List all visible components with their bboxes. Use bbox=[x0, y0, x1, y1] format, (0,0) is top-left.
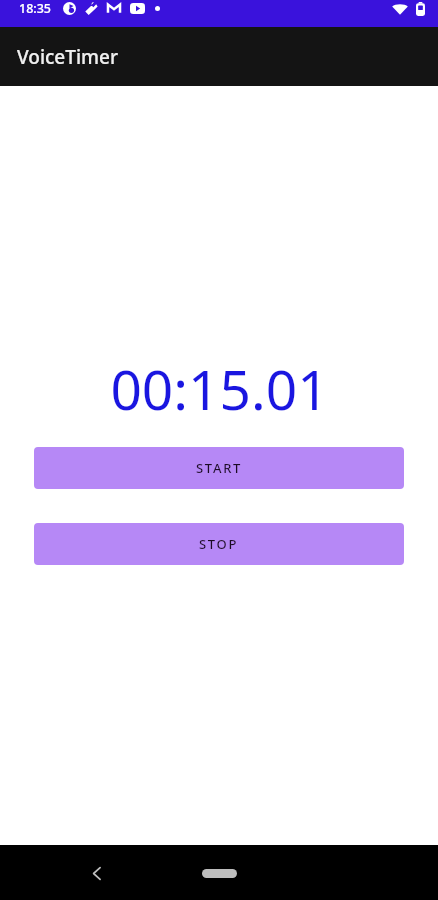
staticText: 18:35 bbox=[19, 0, 52, 17]
button[interactable]: START bbox=[34, 447, 404, 489]
button[interactable]: Back bbox=[80, 856, 114, 890]
button[interactable]: Home bbox=[183, 858, 255, 888]
staticText: 00:15.01 bbox=[110, 351, 329, 426]
button[interactable]: STOP bbox=[34, 523, 404, 565]
staticText: STOP bbox=[199, 535, 239, 553]
staticText: START bbox=[196, 459, 243, 477]
staticText: VoiceTimer bbox=[17, 44, 119, 70]
